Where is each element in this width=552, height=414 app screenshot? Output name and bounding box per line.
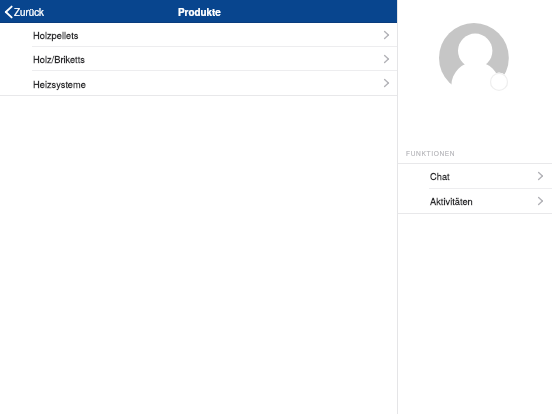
button[interactable]: Holz/Briketts [0, 47, 397, 70]
button[interactable]: Holzpellets [0, 23, 397, 46]
staticText: Chat [430, 169, 450, 182]
button[interactable]: Aktivitäten [398, 189, 552, 213]
staticText: FUNKTIONEN [406, 148, 456, 157]
staticText: Produkte [178, 5, 221, 19]
staticText: Aktivitäten [430, 194, 473, 207]
button[interactable]: Heizsysteme [0, 71, 397, 95]
staticText: Zurück [14, 5, 44, 19]
button[interactable]: Chat [398, 164, 552, 188]
staticText: Heizsysteme [33, 77, 86, 90]
staticText: Holz/Briketts [33, 52, 85, 65]
button[interactable]: Zurück [0, 0, 52, 22]
staticText: Holzpellets [33, 28, 79, 41]
other: Profilbild [439, 23, 519, 103]
